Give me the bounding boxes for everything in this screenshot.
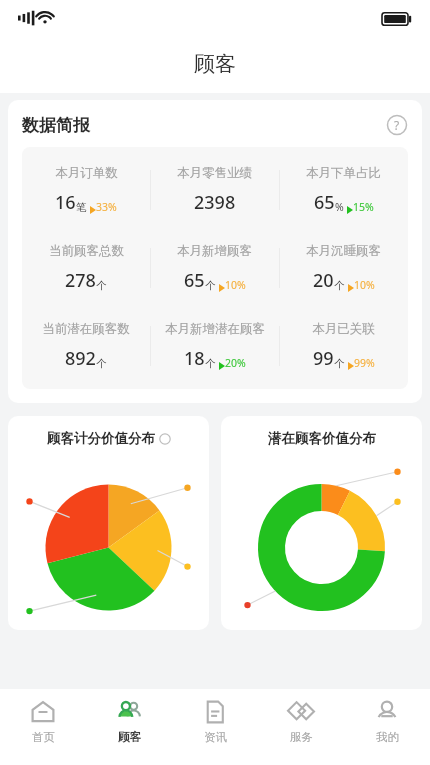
staticText: 资讯 xyxy=(204,730,227,744)
staticText: 个 xyxy=(205,279,216,292)
staticText: 本月零售业绩 xyxy=(177,165,252,181)
staticText: 潜在顾客价值分布 xyxy=(268,430,376,447)
staticText: 278 xyxy=(65,268,96,293)
button[interactable]: 顾客计分价值分布 xyxy=(8,416,209,630)
staticText: 18 xyxy=(184,346,205,371)
staticText: 本月沉睡顾客 xyxy=(306,243,381,259)
button[interactable]: 本月下单占比 xyxy=(279,151,408,229)
button[interactable]: 本月新增顾客 xyxy=(150,229,279,307)
button[interactable]: 本月订单数 xyxy=(22,151,150,229)
staticText: 10% xyxy=(225,278,246,292)
staticText: 服务 xyxy=(290,730,313,744)
staticText: 本月订单数 xyxy=(55,165,118,181)
button[interactable]: 顾客 xyxy=(86,689,172,765)
button[interactable]: 服务 xyxy=(258,689,344,765)
staticText: 顾客 xyxy=(118,730,141,744)
staticText: 笔 xyxy=(76,201,87,214)
button[interactable]: 资讯 xyxy=(172,689,258,765)
button[interactable]: 当前潜在顾客数 xyxy=(22,307,150,385)
staticText: 10% xyxy=(354,278,375,292)
staticText: 顾客计分价值分布 xyxy=(47,430,155,447)
staticText: 65 xyxy=(314,190,335,215)
button[interactable]: 我的 xyxy=(344,689,430,765)
button[interactable]: 本月已关联 xyxy=(279,307,408,385)
staticText: 本月已关联 xyxy=(312,321,375,337)
staticText: 个 xyxy=(96,357,107,370)
staticText: 99 xyxy=(313,346,334,371)
staticText: 65 xyxy=(184,268,205,293)
staticText: 2398 xyxy=(194,190,236,215)
staticText: 本月新增顾客 xyxy=(177,243,252,259)
staticText: ? xyxy=(394,117,400,133)
button[interactable]: 当前顾客总数 xyxy=(22,229,150,307)
staticText: 33% xyxy=(96,200,117,214)
staticText: 当前潜在顾客数 xyxy=(42,321,130,337)
staticText: 首页 xyxy=(32,730,55,744)
staticText: 99% xyxy=(354,356,375,370)
staticText: 892 xyxy=(65,346,96,371)
staticText: 20% xyxy=(225,356,246,370)
staticText: 顾客 xyxy=(194,51,236,77)
staticText: 个 xyxy=(334,357,345,370)
staticText: % xyxy=(335,200,344,214)
staticText: 我的 xyxy=(376,730,399,744)
button[interactable]: 本月沉睡顾客 xyxy=(279,229,408,307)
staticText: 16 xyxy=(55,190,76,215)
button[interactable]: 首页 xyxy=(0,689,86,765)
staticText: 本月下单占比 xyxy=(306,165,381,181)
staticText: 本月新增潜在顾客 xyxy=(165,321,265,337)
staticText: 20 xyxy=(313,268,334,293)
button[interactable]: 本月新增潜在顾客 xyxy=(150,307,279,385)
button[interactable]: 潜在顾客价值分布 xyxy=(221,416,422,630)
staticText: 个 xyxy=(334,279,345,292)
staticText: 个 xyxy=(96,279,107,292)
staticText: 15% xyxy=(353,200,374,214)
staticText: 当前顾客总数 xyxy=(49,243,124,259)
staticText: 个 xyxy=(205,357,216,370)
staticText: 数据简报 xyxy=(22,115,90,136)
button[interactable]: 本月零售业绩 xyxy=(150,151,279,229)
button[interactable]: 帮助 xyxy=(386,114,408,136)
